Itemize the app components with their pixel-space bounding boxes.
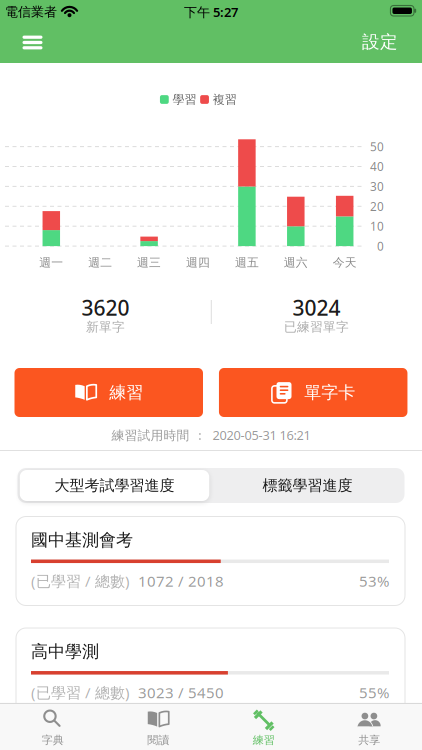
staticText: 1072 / 2018 <box>138 571 224 591</box>
staticText: 3023 / 5450 <box>138 682 224 702</box>
staticText: 練習 <box>253 733 275 747</box>
staticText: 10 <box>370 218 384 234</box>
staticText: 40 <box>370 159 384 174</box>
button[interactable]: 高中學測 <box>16 628 405 717</box>
button[interactable]: 閱讀 <box>106 704 211 750</box>
staticText: 週三 <box>137 255 161 270</box>
staticText: 週五 <box>235 255 259 270</box>
staticText: 大型考試學習進度 <box>54 476 174 495</box>
button[interactable]: 標籤學習進度 <box>213 470 402 501</box>
staticText: 20 <box>370 198 384 214</box>
staticText: 週二 <box>88 255 112 270</box>
staticText: 複習 <box>213 92 237 107</box>
button[interactable]: 大型考試學習進度 <box>20 470 209 501</box>
staticText: 53% <box>359 571 389 591</box>
button[interactable]: 設定 <box>352 27 408 57</box>
staticText: 練習試用時間 ： 2020-05-31 16:21 <box>111 426 310 443</box>
staticText: 練習 <box>109 382 143 403</box>
staticText: 週六 <box>284 255 308 270</box>
staticText: 共享 <box>358 733 380 747</box>
staticText: 3620 <box>81 294 129 321</box>
staticText: 50 <box>370 139 384 154</box>
staticText: 0 <box>377 238 384 254</box>
staticText: (已學習 / 總數) <box>31 682 130 702</box>
staticText: 單字卡 <box>304 382 355 403</box>
staticText: 下午 5:27 <box>184 3 238 21</box>
button[interactable]: 單字卡 <box>219 368 407 417</box>
staticText: 30 <box>370 179 384 194</box>
staticText: 3024 <box>292 294 340 321</box>
staticText: 週一 <box>39 255 63 270</box>
staticText: 電信業者 <box>5 4 57 20</box>
button[interactable]: 練習 <box>14 368 203 417</box>
staticText: 字典 <box>42 733 64 747</box>
staticText: 國中基測會考 <box>31 530 133 550</box>
staticText: 標籤學習進度 <box>262 476 352 495</box>
button[interactable]: 共享 <box>317 704 422 750</box>
staticText: 55% <box>359 682 389 702</box>
staticText: 閱讀 <box>147 733 169 747</box>
staticText: 學習 <box>172 92 196 107</box>
staticText: 週四 <box>186 255 210 270</box>
button[interactable]: 練習 <box>211 704 316 750</box>
staticText: (已學習 / 總數) <box>31 571 130 591</box>
staticText: 設定 <box>362 31 398 53</box>
staticText: 高中學測 <box>31 641 99 662</box>
button[interactable]: Menu <box>14 27 50 57</box>
button[interactable]: 字典 <box>0 704 105 750</box>
staticText: 新單字 <box>86 319 125 335</box>
staticText: 已練習單字 <box>284 319 349 335</box>
button[interactable]: 國中基測會考 <box>16 516 405 605</box>
staticText: 今天 <box>333 255 357 270</box>
